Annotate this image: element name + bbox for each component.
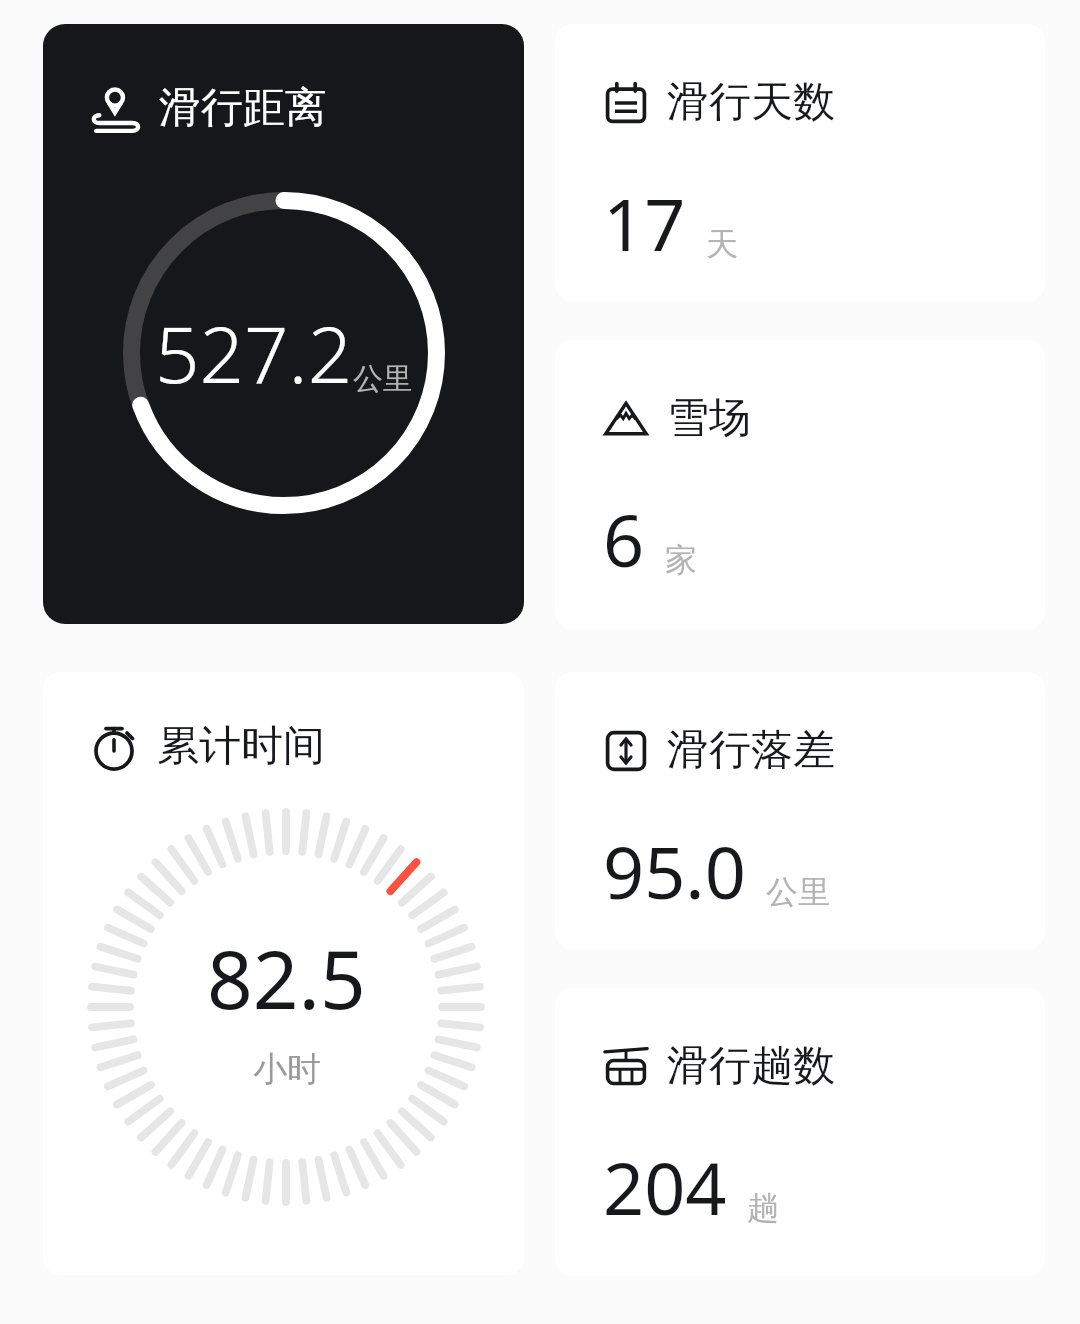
button[interactable]: Stopwatch	[43, 672, 524, 1275]
staticText: 雪场	[667, 392, 751, 445]
other: Stopwatch	[89, 722, 139, 772]
button[interactable]: Vertical drop	[555, 672, 1045, 950]
button[interactable]: Mountain	[555, 340, 1045, 630]
staticText: 17	[603, 174, 686, 272]
staticText: 小时	[253, 1048, 321, 1091]
staticText: 滑行趟数	[667, 1040, 835, 1093]
other: Route	[91, 83, 143, 135]
staticText: 滑行落差	[667, 724, 835, 777]
other: Vertical drop	[603, 728, 649, 774]
other: Mountain	[603, 396, 649, 442]
button[interactable]: Calendar	[555, 24, 1045, 302]
staticText: 天	[706, 224, 738, 264]
staticText: 滑行天数	[667, 76, 835, 129]
staticText: 6	[603, 490, 645, 588]
other: Calendar	[603, 80, 649, 126]
staticText: 公里	[766, 872, 830, 912]
staticText: 趟	[747, 1188, 779, 1228]
staticText: 家	[665, 540, 697, 580]
other: Gondola	[603, 1044, 649, 1090]
staticText: 527.2	[155, 300, 353, 406]
staticText: 82.5	[207, 923, 366, 1032]
staticText: 累计时间	[157, 720, 325, 773]
button[interactable]: Gondola	[555, 988, 1045, 1276]
staticText: 95.0	[603, 822, 746, 920]
staticText: 滑行距离	[159, 82, 327, 135]
staticText: 204	[603, 1138, 727, 1236]
staticText: 公里	[353, 360, 413, 398]
button[interactable]: Route	[43, 24, 524, 624]
